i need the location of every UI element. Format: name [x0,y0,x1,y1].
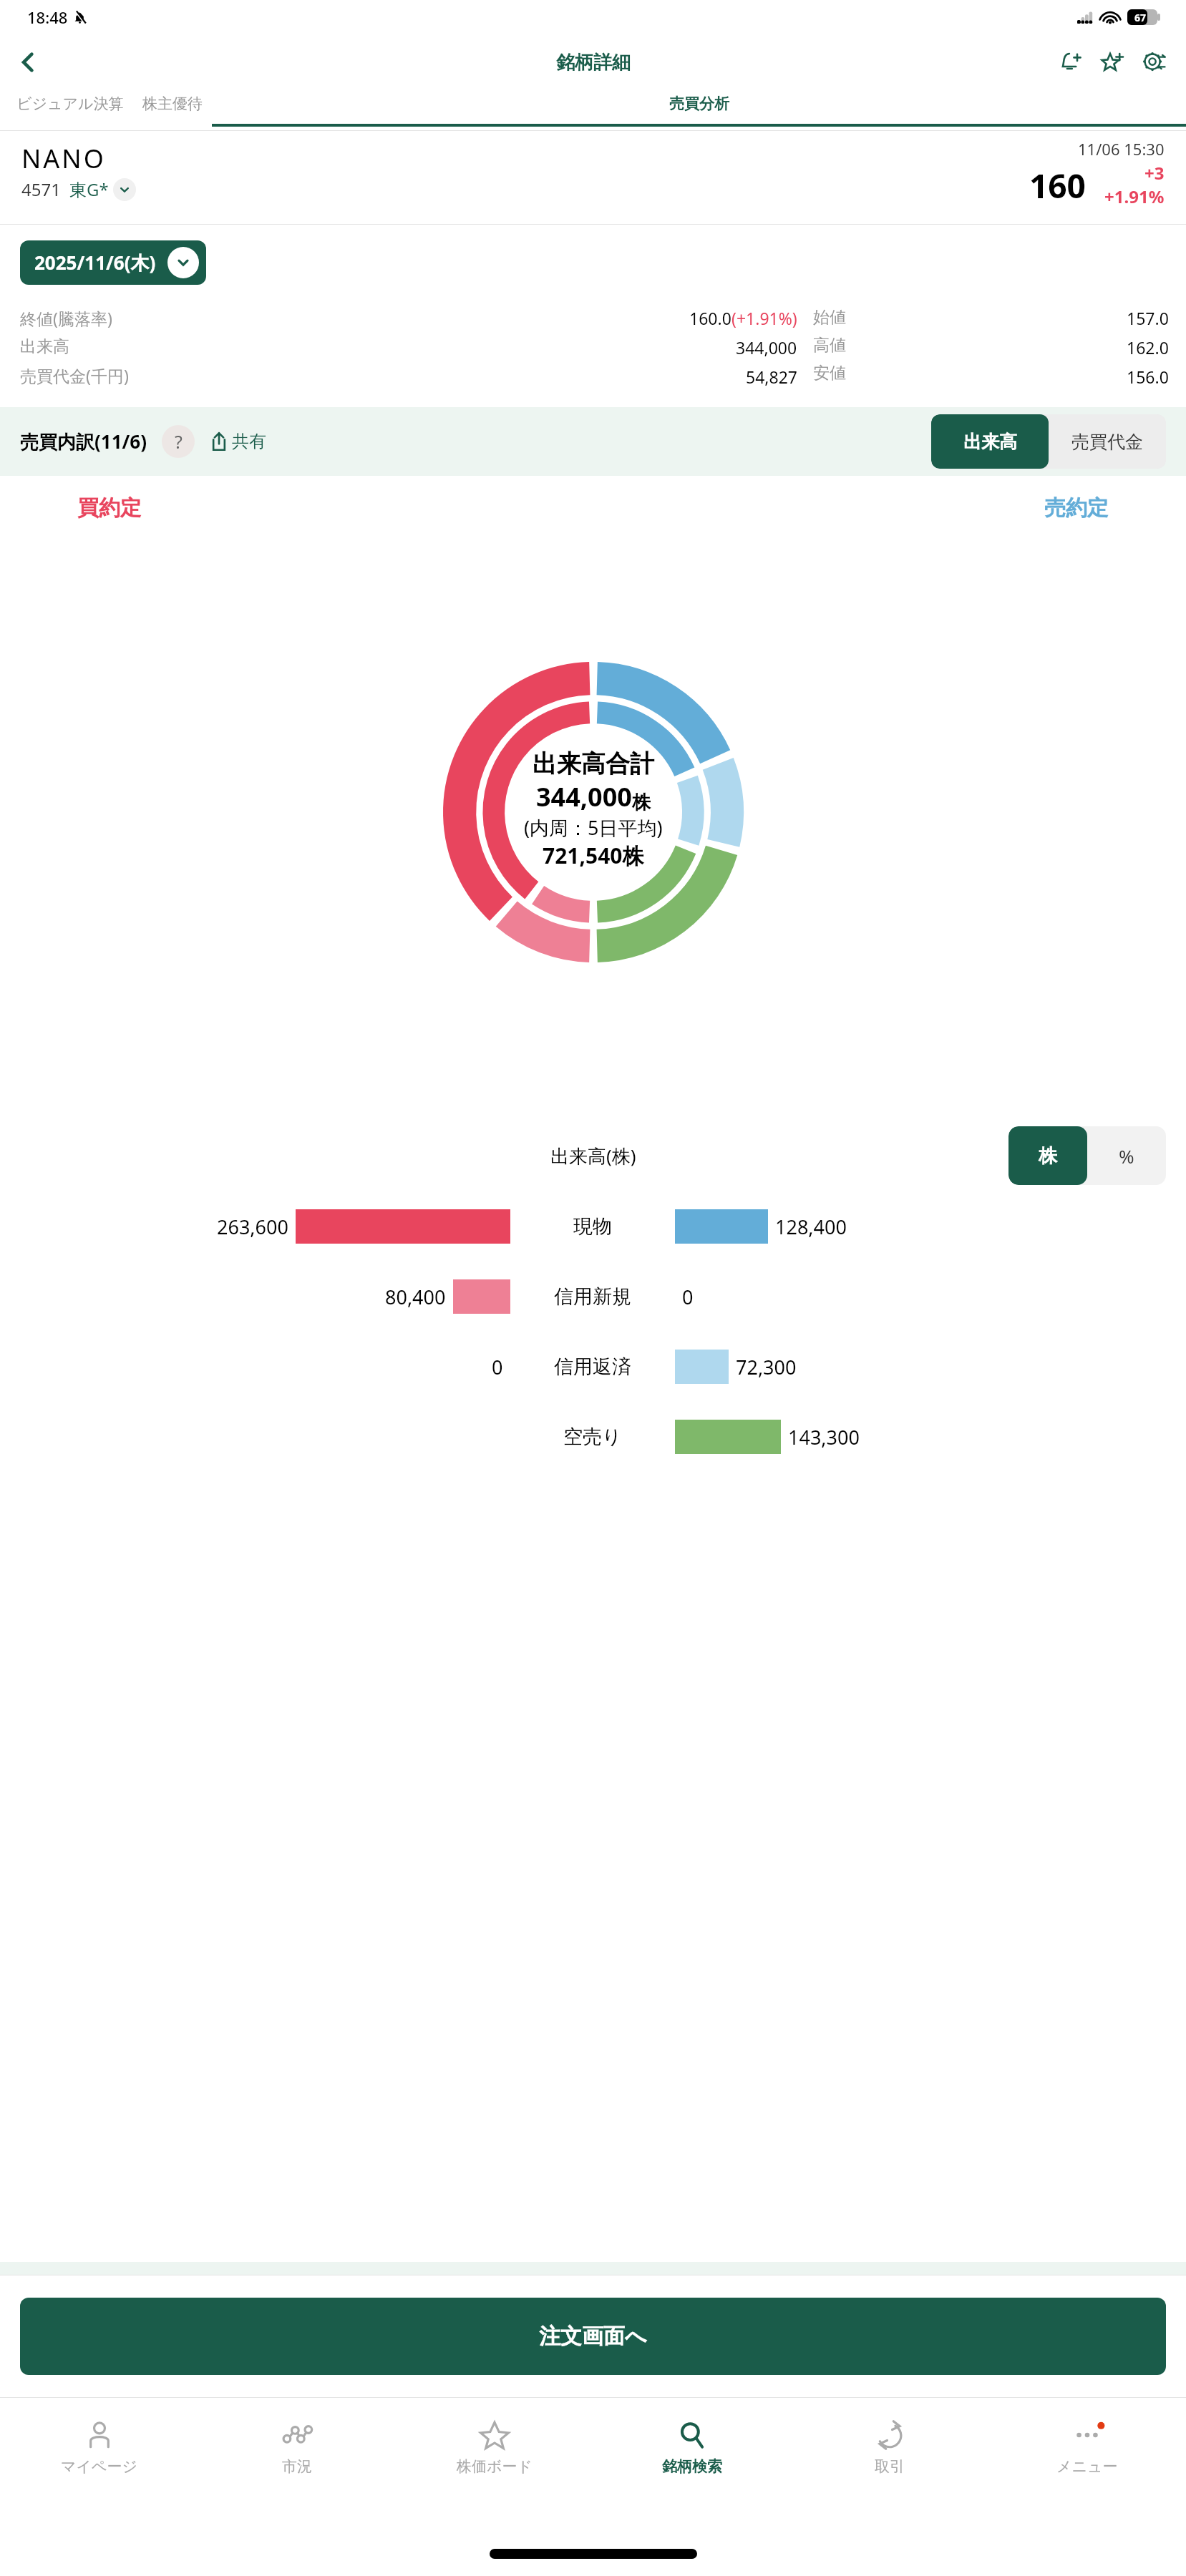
button[interactable]: 設定 [1133,42,1175,83]
staticText: 出来高 [963,431,1017,453]
staticText: 売買内訳(11/6) [20,429,147,454]
button[interactable]: ヘルプ [162,425,195,458]
staticText: 売約定 [1044,494,1109,522]
staticText: 721,540株 [543,841,644,870]
staticText: 空売り [563,1425,622,1449]
staticText: 72,300 [736,1354,797,1380]
staticText: 出来高(株) [550,1143,636,1169]
staticText: 11/06 15:30 [1078,138,1165,160]
button[interactable]: 株 [1008,1126,1087,1185]
staticText: 80,400 [385,1284,446,1310]
staticText: 344,000 [536,779,632,814]
button[interactable]: 市況 [198,2413,396,2479]
staticText: 東G* [69,177,109,201]
staticText: 162.0 [1127,336,1169,358]
staticText: NANO [21,141,106,176]
button[interactable]: Back [6,40,50,84]
staticText: (+1.91%) [731,307,797,329]
staticText: 株価ボード [457,2457,533,2476]
button[interactable]: 共有 [205,426,271,457]
staticText: ? [175,429,183,454]
staticText: 株 [632,791,651,814]
staticText: 157.0 [1127,307,1169,329]
staticText: メニュー [1056,2457,1118,2476]
staticText: 143,300 [788,1424,860,1450]
staticText: 始値 [813,307,846,328]
staticText: 160.0 [689,307,731,329]
button[interactable]: メニュー [988,2413,1186,2479]
staticText: ビジュアル決算 [16,94,124,113]
staticText: 54,827 [746,366,797,388]
staticText: 156.0 [1127,366,1169,388]
button[interactable]: マイページ [0,2413,198,2479]
staticText: 銘柄検索 [662,2457,722,2476]
staticText: マイページ [61,2457,137,2476]
staticText: 終値(騰落率) [20,307,112,329]
button[interactable]: 銘柄検索 [593,2413,791,2479]
button[interactable]: 株主優待 [133,90,212,124]
staticText: 株主優待 [142,94,203,113]
staticText: 信用返済 [554,1355,631,1379]
staticText: 共有 [232,431,266,452]
button[interactable]: 売買代金 [1049,414,1166,469]
staticText: +1.91% [1104,185,1165,208]
staticText: +3 [1144,161,1165,185]
staticText: 注文画面へ [539,2323,647,2350]
staticText: 263,600 [217,1214,288,1240]
staticText: 128,400 [775,1214,847,1240]
staticText: 売買代金(千円) [20,364,129,386]
button[interactable]: アラート追加 [1050,42,1092,83]
button[interactable]: 2025/11/6(木) [20,240,206,285]
staticText: 市況 [282,2457,312,2476]
button[interactable]: 出来高 [931,414,1049,469]
button[interactable]: ビジュアル決算 [7,90,133,124]
button[interactable]: % [1087,1126,1166,1185]
staticText: 18:48 [27,6,68,28]
staticText: 高値 [813,335,846,356]
button[interactable]: 売買分析 [212,90,1186,127]
staticText: (内周：5日平均) [524,814,663,841]
button[interactable]: 注文画面へ [20,2298,1166,2375]
staticText: 買約定 [77,494,142,522]
staticText: 現物 [573,1214,612,1239]
staticText: 344,000 [736,336,797,358]
staticText: 2025/11/6(木) [34,250,156,275]
staticText: % [1119,1143,1134,1169]
staticText: 0 [682,1284,694,1310]
staticText: 出来高 [20,336,69,357]
staticText: 売買分析 [669,94,729,113]
staticText: 67 [1134,11,1147,24]
staticText: 銘柄詳細 [556,51,631,74]
staticText: 出来高合計 [533,748,654,779]
staticText: 売買代金 [1071,431,1143,453]
staticText: 0 [492,1354,503,1380]
staticText: 160 [1029,163,1086,208]
staticText: 信用新規 [554,1284,631,1309]
staticText: 株 [1039,1144,1057,1168]
staticText: 4571 [21,177,61,201]
button[interactable]: 市場選択 [113,178,136,201]
staticText: 安値 [813,363,846,384]
button[interactable]: お気に入り追加 [1092,42,1133,83]
button[interactable]: 株価ボード [396,2413,593,2479]
button[interactable]: 取引 [791,2413,988,2479]
staticText: 取引 [875,2457,905,2476]
